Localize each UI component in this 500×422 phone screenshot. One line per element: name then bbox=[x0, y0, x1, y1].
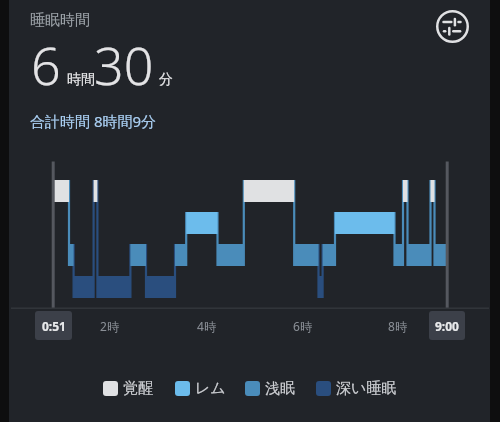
staticText: 合計時間 8時間9分 bbox=[30, 111, 157, 131]
staticText: 睡眠時間 bbox=[30, 11, 90, 30]
staticText: 浅眠 bbox=[265, 379, 295, 398]
staticText: 4時 bbox=[197, 318, 216, 334]
staticText: 深い睡眠 bbox=[336, 379, 397, 398]
button[interactable]: 9:00 bbox=[429, 311, 465, 340]
staticText: 2時 bbox=[100, 318, 119, 334]
staticText: レム bbox=[195, 379, 226, 398]
staticText: 覚醒 bbox=[123, 379, 153, 398]
button[interactable]: 0:51 bbox=[35, 311, 72, 340]
staticText: 30 bbox=[94, 29, 154, 100]
button[interactable]: Settings bbox=[434, 8, 470, 44]
staticText: 9:00 bbox=[435, 318, 459, 334]
staticText: 0:51 bbox=[42, 318, 66, 334]
staticText: 6 bbox=[31, 29, 61, 100]
staticText: 時間 bbox=[67, 71, 95, 89]
staticText: 分 bbox=[159, 71, 173, 89]
staticText: 8時 bbox=[388, 318, 407, 334]
staticText: 6時 bbox=[293, 318, 312, 334]
